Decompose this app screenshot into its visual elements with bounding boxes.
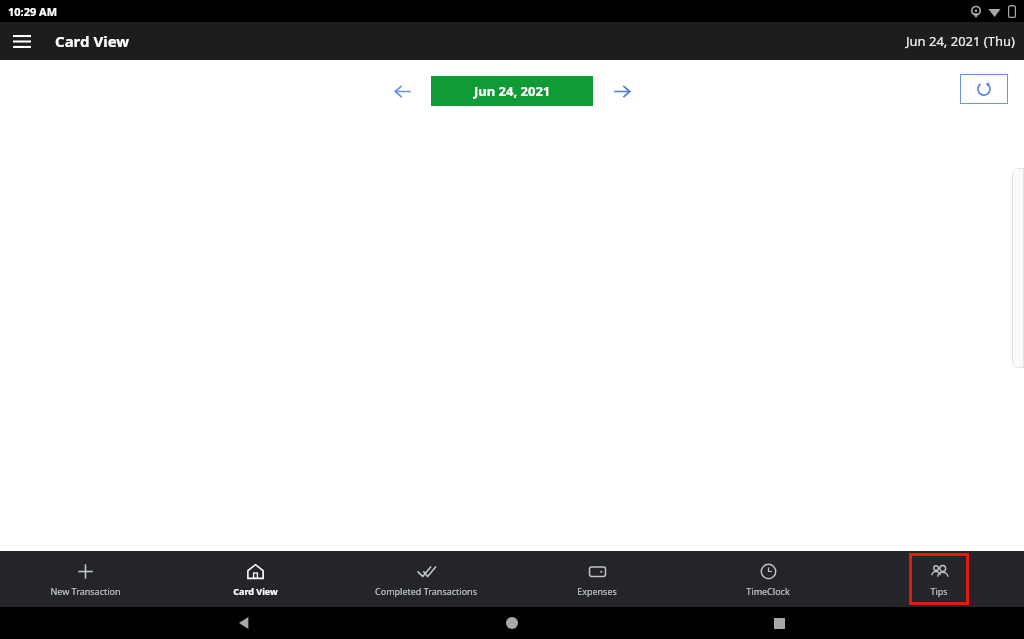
button[interactable]: Jun 24, 2021 bbox=[431, 76, 593, 106]
button[interactable]: New Transaction bbox=[48, 562, 123, 597]
button[interactable]: Previous day bbox=[385, 74, 419, 108]
button[interactable]: Expenses bbox=[575, 562, 619, 597]
button[interactable]: TimeClock bbox=[744, 562, 792, 597]
staticText: Jun 24, 2021 (Thu) bbox=[906, 32, 1015, 50]
button[interactable]: Card View bbox=[231, 562, 280, 597]
staticText: New Transaction bbox=[50, 585, 121, 597]
staticText: TimeClock bbox=[746, 585, 790, 597]
button[interactable]: Next day bbox=[605, 74, 639, 108]
button[interactable]: Completed Transactions bbox=[373, 562, 479, 597]
staticText: 10:29 AM bbox=[8, 4, 58, 19]
staticText: Expenses bbox=[577, 585, 617, 597]
staticText: Completed Transactions bbox=[375, 585, 477, 597]
button[interactable]: Open navigation menu bbox=[4, 23, 40, 59]
button[interactable]: Refresh bbox=[960, 74, 1008, 104]
button[interactable]: Tips bbox=[909, 553, 969, 605]
button[interactable]: Back bbox=[223, 607, 267, 639]
button[interactable]: Recent apps bbox=[757, 607, 801, 639]
staticText: Tips bbox=[930, 585, 948, 597]
staticText: Card View bbox=[233, 585, 278, 597]
staticText: Jun 24, 2021 bbox=[474, 82, 551, 100]
staticText: Card View bbox=[55, 31, 130, 51]
button[interactable]: Home bbox=[490, 607, 534, 639]
